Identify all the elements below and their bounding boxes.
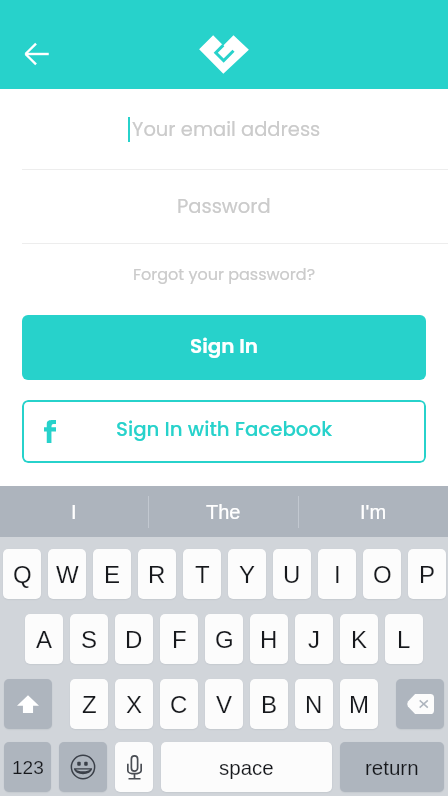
button[interactable]: Forgot your password? xyxy=(0,244,448,315)
staticText: O xyxy=(373,561,392,588)
button[interactable]: R xyxy=(138,549,176,599)
staticText: 123 xyxy=(12,757,44,778)
staticText: P xyxy=(419,561,436,588)
staticText: X xyxy=(126,691,143,718)
button[interactable]: 123 xyxy=(4,742,51,792)
staticText: Sign In xyxy=(190,332,259,360)
staticText: G xyxy=(215,626,234,653)
button[interactable]: I'm xyxy=(299,486,448,537)
staticText: B xyxy=(261,691,278,718)
button[interactable]: Password xyxy=(0,170,448,243)
staticText: N xyxy=(305,691,323,718)
button[interactable]: Back xyxy=(18,35,56,73)
button[interactable]: Voice input xyxy=(115,742,153,792)
button[interactable]: P xyxy=(408,549,446,599)
button[interactable]: I xyxy=(318,549,356,599)
staticText: R xyxy=(148,561,166,588)
staticText: I xyxy=(334,561,341,588)
button[interactable]: V xyxy=(205,679,243,729)
staticText: J xyxy=(308,626,320,653)
button[interactable]: K xyxy=(340,614,378,664)
staticText: C xyxy=(170,691,188,718)
staticText: T xyxy=(195,561,210,588)
button[interactable]: Your email address xyxy=(0,89,448,169)
staticText: F xyxy=(172,626,187,653)
button[interactable]: Y xyxy=(228,549,266,599)
button[interactable]: N xyxy=(295,679,333,729)
button[interactable]: Sign In xyxy=(22,315,426,380)
staticText: D xyxy=(125,626,143,653)
button[interactable]: Q xyxy=(3,549,41,599)
button[interactable]: I xyxy=(0,486,148,537)
button[interactable]: B xyxy=(250,679,288,729)
button[interactable]: L xyxy=(385,614,423,664)
button[interactable]: return xyxy=(340,742,444,792)
button[interactable]: space xyxy=(161,742,332,792)
button[interactable]: D xyxy=(115,614,153,664)
button[interactable]: X xyxy=(115,679,153,729)
staticText: K xyxy=(351,626,368,653)
button[interactable]: S xyxy=(70,614,108,664)
staticText: space xyxy=(219,756,274,779)
staticText: Z xyxy=(82,691,97,718)
staticText: Forgot your password? xyxy=(133,263,316,285)
staticText: H xyxy=(260,626,278,653)
staticText: W xyxy=(56,561,79,588)
button[interactable]: H xyxy=(250,614,288,664)
staticText: S xyxy=(81,626,98,653)
staticText: Y xyxy=(239,561,256,588)
button[interactable]: W xyxy=(48,549,86,599)
button[interactable]: The xyxy=(149,486,298,537)
button[interactable]: F xyxy=(160,614,198,664)
button[interactable]: C xyxy=(160,679,198,729)
button[interactable]: J xyxy=(295,614,333,664)
button[interactable]: Backspace xyxy=(396,679,444,729)
button[interactable]: Sign In with Facebook xyxy=(22,400,426,463)
button[interactable]: O xyxy=(363,549,401,599)
button[interactable]: M xyxy=(340,679,378,729)
button[interactable]: U xyxy=(273,549,311,599)
button[interactable]: Emoji xyxy=(59,742,107,792)
staticText: Your email address xyxy=(132,116,321,143)
button[interactable]: Z xyxy=(70,679,108,729)
staticText: V xyxy=(216,691,233,718)
staticText: A xyxy=(36,626,53,653)
button[interactable]: T xyxy=(183,549,221,599)
staticText: Password xyxy=(177,193,271,220)
staticText: Sign In with Facebook xyxy=(116,415,333,443)
button[interactable]: A xyxy=(25,614,63,664)
staticText: L xyxy=(397,626,411,653)
staticText: M xyxy=(349,691,369,718)
staticText: return xyxy=(365,756,419,779)
staticText: I'm xyxy=(360,501,387,523)
staticText: The xyxy=(206,501,241,523)
button[interactable]: Shift xyxy=(4,679,52,729)
staticText: E xyxy=(104,561,121,588)
staticText: Q xyxy=(13,561,32,588)
button[interactable]: G xyxy=(205,614,243,664)
button[interactable]: E xyxy=(93,549,131,599)
staticText: I xyxy=(71,501,77,523)
staticText: U xyxy=(283,561,301,588)
